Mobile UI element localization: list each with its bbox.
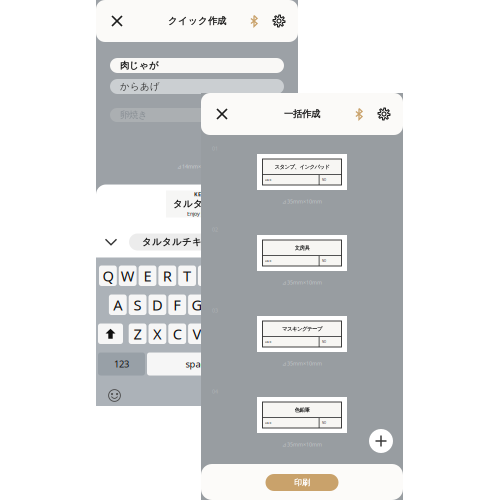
staticText: W: [121, 266, 135, 285]
staticText: タルタルチキン南蛮: [142, 236, 230, 248]
staticText: Z: [134, 324, 142, 343]
staticText: S: [134, 295, 142, 314]
staticText: DATE: [265, 259, 271, 263]
button[interactable]: Bluetooth: [347, 93, 371, 135]
staticText: A: [113, 295, 122, 314]
staticText: C: [173, 324, 182, 343]
staticText: DATE: [265, 178, 271, 182]
staticText: R: [163, 266, 172, 285]
staticText: DATE: [265, 421, 271, 425]
staticText: タルタルチ: [173, 198, 223, 210]
staticText: 03: [212, 307, 218, 314]
staticText: Enjoy your: [187, 210, 212, 217]
staticText: 印刷: [294, 478, 310, 487]
staticText: 02: [212, 226, 218, 233]
button[interactable]: 印刷: [265, 474, 338, 491]
staticText: スタンプ、インクパッド: [274, 164, 329, 170]
staticText: P: [282, 266, 291, 285]
button[interactable]: Add: [369, 429, 393, 453]
staticText: マスキングテープ: [282, 326, 322, 332]
staticText: F: [173, 295, 181, 314]
staticText: ⊿ 14mm×17mm: [177, 163, 217, 170]
staticText: T: [183, 266, 191, 285]
staticText: ⊿ 35mm×10mm: [282, 441, 322, 448]
staticText: V: [192, 324, 201, 343]
staticText: 一括作成: [284, 108, 320, 120]
button[interactable]: Bluetooth: [242, 0, 266, 42]
staticText: Q: [102, 266, 113, 285]
staticText: NO: [322, 340, 326, 344]
staticText: O: [261, 266, 272, 285]
staticText: ⊿ 35mm×10mm: [282, 198, 322, 205]
staticText: D: [152, 295, 163, 314]
button[interactable]: Collapse: [102, 233, 120, 251]
staticText: DATE: [265, 340, 271, 344]
staticText: 文房具: [294, 245, 309, 251]
staticText: NO: [322, 421, 326, 425]
staticText: X: [153, 324, 162, 343]
staticText: ⊿ 35mm×10mm: [282, 360, 322, 367]
staticText: からあげ: [120, 81, 160, 92]
staticText: E: [143, 266, 151, 285]
staticText: 卵焼き: [120, 109, 148, 121]
staticText: クイック作成: [168, 15, 226, 27]
staticText: 01: [212, 145, 218, 152]
staticText: NO: [322, 178, 326, 182]
button[interactable]: Settings: [266, 0, 292, 42]
button[interactable]: Close: [207, 93, 237, 135]
staticText: G: [191, 295, 202, 314]
staticText: NO: [322, 259, 326, 263]
staticText: ⊿ 35mm×10mm: [282, 279, 322, 286]
staticText: space: [185, 358, 209, 370]
staticText: M: [250, 324, 263, 343]
button[interactable]: Settings: [371, 93, 397, 135]
staticText: 肉じゃが: [120, 60, 159, 71]
staticText: 123: [114, 358, 129, 370]
button[interactable]: Close: [102, 0, 132, 42]
staticText: 色鉛筆: [294, 407, 309, 413]
staticText: KEWPIE: [194, 191, 214, 198]
staticText: 04: [212, 388, 218, 395]
